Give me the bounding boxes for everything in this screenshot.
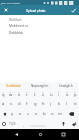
button[interactable]: Home	[33, 129, 47, 140]
button[interactable]: Voice input	[58, 119, 68, 129]
button[interactable]: Space	[28, 119, 48, 129]
button[interactable]: 7	[47, 89, 55, 99]
staticText: v	[35, 111, 38, 117]
staticText: Neptunglich	[31, 84, 49, 88]
staticText: 9	[66, 90, 68, 93]
staticText: w	[9, 92, 13, 98]
button[interactable]: g	[31, 99, 39, 109]
button[interactable]: 5	[31, 89, 39, 99]
staticText: m	[58, 111, 62, 117]
staticText: z	[42, 92, 44, 98]
button[interactable]: 9	[63, 89, 71, 99]
staticText: Jetzt 18:23 etwas	[1, 1, 20, 4]
button[interactable]: 6	[39, 89, 47, 99]
button[interactable]: n	[48, 109, 56, 119]
staticText: p	[74, 92, 77, 98]
staticText: 5	[34, 90, 36, 93]
staticText: Mobilfunk	[9, 18, 22, 22]
staticText: 3	[18, 90, 20, 93]
staticText: y	[11, 111, 14, 117]
staticText: x	[19, 111, 22, 117]
staticText: g	[34, 101, 37, 107]
staticText: 7	[50, 90, 52, 93]
button[interactable]: ,	[18, 119, 28, 129]
staticText: f	[26, 101, 28, 107]
staticText: 1	[3, 90, 5, 93]
button[interactable]: Neptunglich	[27, 82, 53, 89]
staticText: 6	[42, 90, 44, 93]
staticText: k	[58, 101, 61, 107]
button[interactable]: 3	[15, 89, 23, 99]
staticText: n	[51, 111, 54, 117]
staticText: ,	[23, 122, 24, 127]
button[interactable]: Enter	[68, 119, 79, 129]
button[interactable]: Recents	[56, 129, 70, 140]
button[interactable]: 2	[7, 89, 15, 99]
button[interactable]: y	[9, 109, 16, 119]
button[interactable]: Emoji	[0, 119, 7, 129]
button[interactable]: 8	[55, 89, 63, 99]
button[interactable]: m	[56, 109, 64, 119]
button[interactable]: 0	[71, 89, 79, 99]
staticText: l	[66, 101, 68, 107]
button[interactable]: k	[55, 99, 63, 109]
staticText: .	[53, 122, 54, 127]
staticText: Debbbbb	[9, 31, 23, 35]
button[interactable]: 1	[0, 89, 7, 99]
staticText: Upload photo	[26, 9, 46, 13]
staticText: r	[26, 92, 28, 98]
button[interactable]: v	[32, 109, 40, 119]
button[interactable]: f	[23, 99, 31, 109]
staticText: d	[18, 101, 21, 107]
staticText: q	[2, 92, 5, 98]
button[interactable]: j	[47, 99, 55, 109]
staticText: ?123	[9, 122, 16, 126]
staticText: j	[50, 101, 52, 107]
button[interactable]: c	[24, 109, 32, 119]
staticText: h	[42, 101, 45, 107]
staticText: o	[66, 92, 69, 98]
staticText: 4	[26, 90, 28, 93]
button[interactable]: l	[63, 99, 71, 109]
staticText: s	[10, 101, 13, 107]
button[interactable]: Shift	[0, 109, 9, 119]
staticText: Debbbbbb	[6, 84, 21, 88]
staticText: 0	[74, 90, 76, 93]
button[interactable]: Confirm	[68, 5, 79, 15]
button[interactable]: b	[40, 109, 48, 119]
staticText: ö	[74, 101, 77, 107]
button[interactable]: a	[0, 99, 7, 109]
button[interactable]: Backspace	[64, 109, 79, 119]
button[interactable]: h	[39, 99, 47, 109]
staticText: 2	[10, 90, 12, 93]
button[interactable]: Debbbbbb	[0, 82, 27, 89]
button[interactable]: Smalglich	[53, 82, 79, 89]
staticText: a	[2, 101, 5, 107]
staticText: Smalglich	[59, 84, 73, 88]
button[interactable]: ö	[71, 99, 79, 109]
button[interactable]: s	[7, 99, 15, 109]
staticText: e	[18, 92, 21, 98]
staticText: b	[43, 111, 46, 117]
staticText: c	[27, 111, 30, 117]
button[interactable]: Close	[0, 5, 11, 15]
staticText: u	[50, 92, 53, 98]
button[interactable]: x	[16, 109, 24, 119]
staticText: t	[34, 92, 36, 98]
button[interactable]: ?123	[7, 119, 18, 129]
staticText: i	[58, 92, 60, 98]
button[interactable]: 4	[23, 89, 31, 99]
button[interactable]: Back	[9, 129, 23, 140]
staticText: Mobilenet.cz	[9, 24, 29, 28]
staticText: 8	[58, 90, 60, 93]
button[interactable]: d	[15, 99, 23, 109]
